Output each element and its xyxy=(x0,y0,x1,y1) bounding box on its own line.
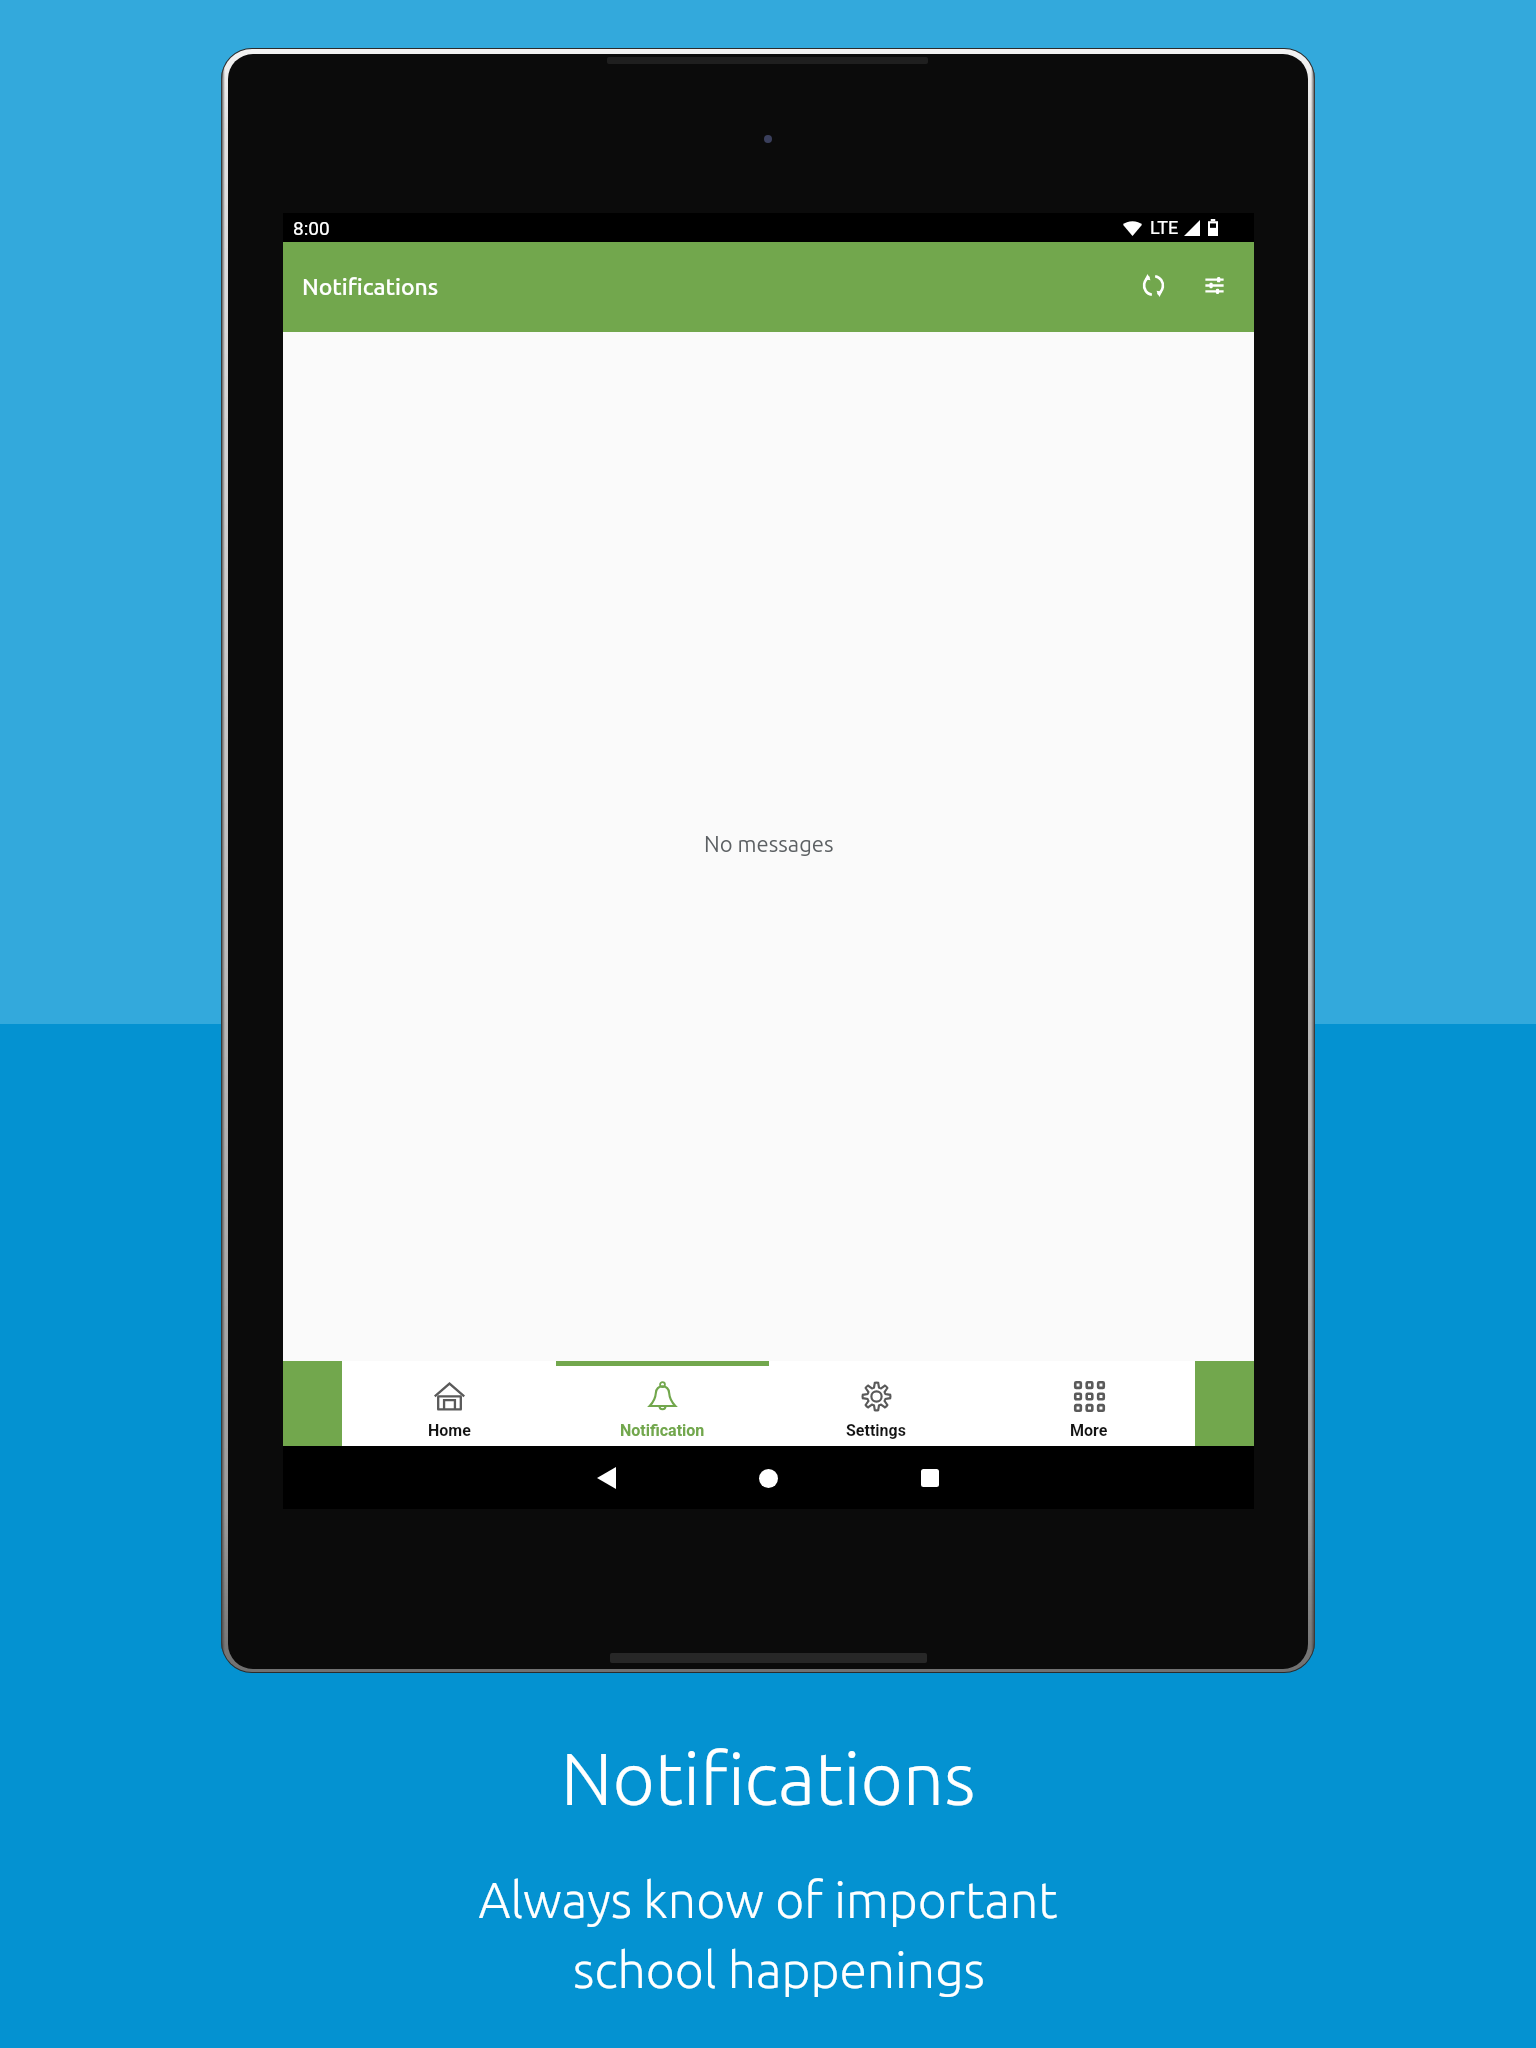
button[interactable]: Home xyxy=(342,1361,556,1446)
button[interactable]: Settings xyxy=(769,1361,982,1446)
staticText: school happenings xyxy=(11,1941,1536,1997)
staticText: Settings xyxy=(846,1421,906,1440)
staticText: No messages xyxy=(704,831,834,856)
button[interactable]: Recent apps xyxy=(902,1450,958,1506)
button[interactable]: Filter settings xyxy=(1187,258,1241,312)
staticText: Notifications xyxy=(302,274,439,300)
staticText: Notification xyxy=(620,1421,705,1440)
button[interactable]: Refresh xyxy=(1126,258,1180,312)
button[interactable]: More xyxy=(982,1361,1195,1446)
button[interactable]: Back xyxy=(578,1450,634,1506)
staticText: Home xyxy=(428,1421,471,1440)
button[interactable]: Home xyxy=(740,1450,796,1506)
staticText: Notifications xyxy=(0,1737,1536,1819)
staticText: LTE xyxy=(1150,217,1179,238)
button[interactable]: Notification xyxy=(556,1361,769,1446)
staticText: 8:00 xyxy=(293,217,330,239)
staticText: More xyxy=(1070,1421,1108,1440)
staticText: Always know of important xyxy=(0,1871,1536,1927)
